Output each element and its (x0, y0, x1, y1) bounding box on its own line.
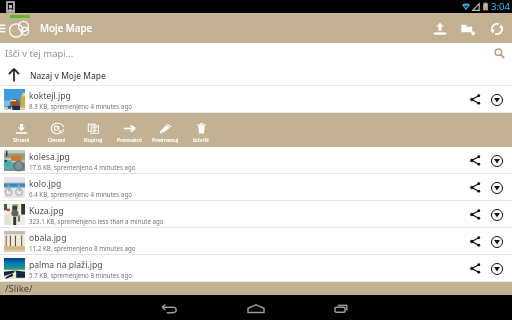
button[interactable]: More options (486, 201, 508, 228)
staticText: koktejl.jpg (29, 90, 71, 102)
button[interactable]: More options (486, 147, 508, 174)
staticText: 323.1 KB, spremenjeno less than a minute… (29, 217, 164, 225)
button[interactable]: obala.jpg (0, 228, 512, 255)
button[interactable]: Recents (315, 295, 371, 320)
staticText: Nazaj v Moje Mape (30, 70, 106, 81)
button[interactable]: Navigation drawer (0, 19, 8, 37)
button[interactable]: Share (464, 255, 486, 282)
button[interactable]: Išči v tej mapi... (0, 43, 512, 64)
staticText: 3:04 (491, 0, 510, 13)
staticText: 17.6 KB, spremenjeno 4 minutes ago (29, 163, 136, 171)
button[interactable]: App logo (8, 18, 32, 43)
button[interactable]: palma na plaži.jpg (0, 255, 512, 282)
staticText: Izbriši (193, 136, 209, 143)
button[interactable]: New folder (454, 15, 482, 43)
button[interactable]: Share (464, 201, 486, 228)
button[interactable]: More options (486, 86, 508, 113)
button[interactable]: Back (141, 295, 197, 320)
button[interactable]: Izbriši (183, 113, 219, 147)
staticText: Kuza.jpg (29, 205, 64, 217)
staticText: kolo.jpg (29, 178, 62, 190)
button[interactable]: Share (464, 147, 486, 174)
button[interactable]: More options (486, 174, 508, 201)
staticText: Omeni (48, 136, 66, 143)
staticText: Kopiraj (84, 136, 103, 143)
button[interactable]: Shrani (3, 113, 39, 147)
button[interactable]: Share (464, 86, 486, 113)
staticText: 5.7 KB, spremenjeno 8 minutes ago (29, 271, 132, 279)
staticText: Moje Mape (40, 22, 93, 35)
button[interactable]: Kopiraj (75, 113, 111, 147)
staticText: /Slike/ (5, 282, 33, 295)
button[interactable]: /Slike/ (0, 282, 512, 295)
staticText: Premakni (117, 136, 142, 143)
button[interactable]: Refresh (482, 15, 512, 43)
staticText: obala.jpg (29, 232, 67, 244)
button[interactable]: Omeni (39, 113, 75, 147)
staticText: palma na plaži.jpg (29, 259, 103, 271)
button[interactable]: Preimenuj (147, 113, 183, 147)
button[interactable]: Nazaj v Moje Mape (0, 64, 512, 86)
button[interactable]: Home (228, 295, 284, 320)
button[interactable]: kolo.jpg (0, 174, 512, 201)
staticText: Shrani (13, 136, 30, 143)
staticText: 8.3 KB, spremenjeno 4 minutes ago (29, 102, 132, 110)
staticText: 6.4 KB, spremenjeno 4 minutes ago (29, 190, 132, 198)
button[interactable]: More options (486, 228, 508, 255)
button[interactable]: Share (464, 174, 486, 201)
button[interactable]: Share (464, 228, 486, 255)
button[interactable]: kolesa.jpg (0, 147, 512, 174)
staticText: kolesa.jpg (29, 151, 70, 163)
button[interactable]: Upload (426, 15, 454, 43)
staticText: Išči v tej mapi... (5, 47, 74, 60)
staticText: 11.2 KB, spremenjeno 8 minutes ago (29, 244, 136, 252)
button[interactable]: Premakni (111, 113, 147, 147)
button[interactable]: More options (486, 255, 508, 282)
staticText: Preimenuj (152, 136, 179, 143)
button[interactable]: Kuza.jpg (0, 201, 512, 228)
button[interactable]: koktejl.jpg (0, 86, 512, 113)
